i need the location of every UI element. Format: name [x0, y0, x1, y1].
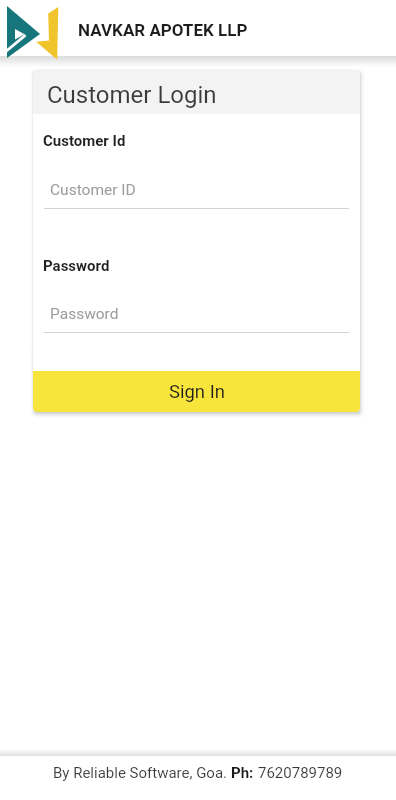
staticText: 7620789789: [258, 764, 343, 782]
staticText: Customer ID: [50, 181, 136, 199]
button[interactable]: Customer ID: [44, 174, 349, 205]
staticText: Customer Id: [43, 132, 126, 150]
staticText: Sign In: [169, 381, 225, 403]
staticText: Customer Login: [47, 81, 217, 109]
button[interactable]: Password: [44, 298, 349, 329]
staticText: By Reliable Software, Goa.: [53, 764, 231, 782]
button[interactable]: Sign In: [33, 371, 360, 412]
staticText: Password: [50, 305, 119, 323]
staticText: NAVKAR APOTEK LLP: [78, 20, 248, 40]
staticText: Password: [43, 257, 110, 275]
staticText: Ph:: [231, 764, 258, 782]
